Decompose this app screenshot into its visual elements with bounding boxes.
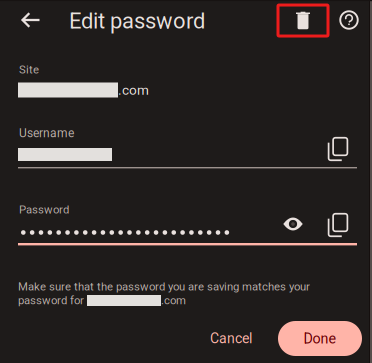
staticText: .com <box>161 294 186 307</box>
button[interactable]: Delete password <box>278 5 328 36</box>
button[interactable]: Help <box>332 3 366 37</box>
staticText: password for <box>18 294 87 307</box>
button[interactable]: Back <box>9 3 53 37</box>
button[interactable]: Copy username <box>322 136 354 162</box>
button[interactable]: Cancel <box>196 321 266 356</box>
staticText: Edit password <box>69 8 205 34</box>
staticText: Make sure that the password you are savi… <box>18 280 310 293</box>
staticText: Password <box>19 203 69 216</box>
staticText: Site <box>19 63 39 76</box>
staticText: .com <box>118 82 149 98</box>
button[interactable]: Copy password <box>322 212 354 238</box>
staticText: Username <box>19 126 74 140</box>
button[interactable]: Done <box>278 321 362 356</box>
staticText: Done <box>303 330 336 347</box>
staticText: Cancel <box>210 330 252 347</box>
button[interactable]: Show password <box>279 211 307 237</box>
